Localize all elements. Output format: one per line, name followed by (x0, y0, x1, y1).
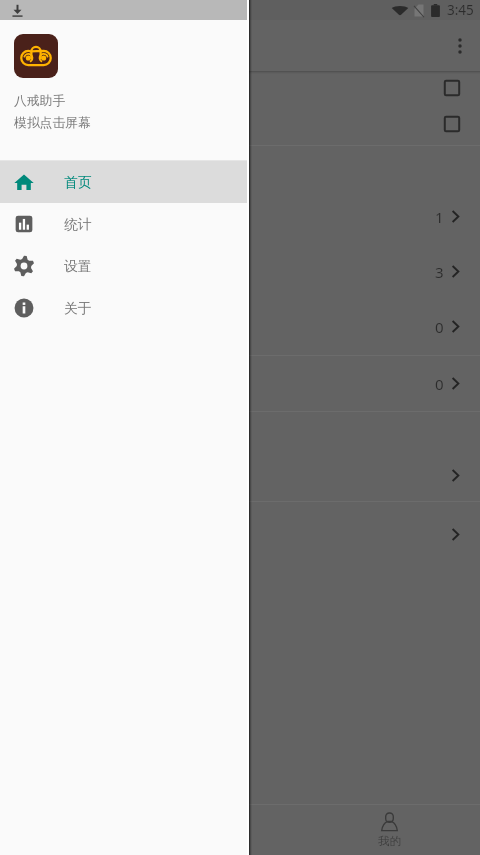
button[interactable] (0, 505, 480, 560)
staticText: 3 (435, 262, 444, 282)
staticText: 0 (435, 374, 444, 394)
staticText: 统计 (64, 216, 92, 233)
button[interactable]: 设置 (0, 245, 249, 287)
staticText: 八戒助手 (14, 93, 66, 109)
button[interactable]: 0 (0, 356, 480, 411)
other: Checkbox (444, 80, 460, 96)
button[interactable]: 首页 (0, 161, 249, 203)
staticText: 0 (435, 317, 444, 337)
button[interactable]: 1 (0, 189, 480, 244)
staticText: 模拟点击屏幕 (14, 115, 91, 131)
staticText: 1 (435, 207, 444, 227)
button[interactable] (0, 446, 480, 501)
staticText: 3:45 (447, 1, 474, 19)
staticText: 我的 (378, 834, 401, 848)
button[interactable]: 0 (0, 299, 480, 354)
button[interactable]: More options (441, 27, 479, 65)
staticText: 关于 (64, 300, 92, 317)
staticText: 首页 (64, 174, 92, 191)
button[interactable]: 关于 (0, 287, 249, 329)
button[interactable]: 3 (0, 244, 480, 299)
staticText: 设置 (64, 258, 92, 275)
button[interactable]: 我的 (341, 805, 437, 855)
other: Checkbox (444, 116, 460, 132)
button[interactable]: Checkbox (0, 74, 480, 102)
button[interactable]: Checkbox (0, 102, 480, 145)
button[interactable]: 统计 (0, 203, 249, 245)
